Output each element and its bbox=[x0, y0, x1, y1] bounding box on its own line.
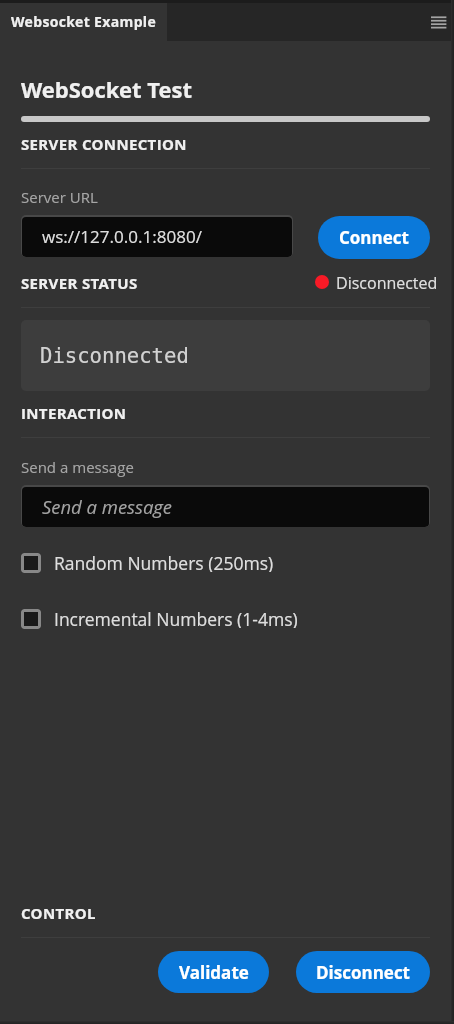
button[interactable]: Validate bbox=[158, 951, 269, 993]
button[interactable]: Disconnect bbox=[296, 951, 430, 993]
button[interactable]: Incremental Numbers (1-4ms) bbox=[21, 608, 430, 629]
staticText: SERVER CONNECTION bbox=[21, 134, 187, 154]
staticText: WebSocket Test bbox=[21, 74, 192, 104]
staticText: Incremental Numbers (1-4ms) bbox=[54, 607, 298, 628]
staticText: Send a message bbox=[42, 494, 172, 519]
staticText: CONTROL bbox=[21, 903, 96, 923]
staticText: Connect bbox=[339, 226, 409, 249]
staticText: Websocket Example bbox=[11, 12, 157, 31]
staticText: Validate bbox=[179, 961, 249, 984]
button[interactable]: ws://127.0.0.1:8080/ bbox=[21, 215, 293, 257]
button[interactable]: Random Numbers (250ms) bbox=[21, 552, 430, 573]
staticText: ws://127.0.0.1:8080/ bbox=[42, 225, 202, 248]
staticText: Random Numbers (250ms) bbox=[54, 551, 274, 572]
button[interactable]: Send a message bbox=[21, 485, 430, 527]
staticText: Server URL bbox=[21, 187, 98, 207]
staticText: Send a message bbox=[21, 457, 134, 477]
button[interactable]: Websocket Example bbox=[0, 0, 167, 41]
button[interactable]: Menu bbox=[423, 9, 454, 34]
staticText: Disconnected bbox=[40, 344, 189, 368]
staticText: Disconnect bbox=[316, 961, 410, 984]
button[interactable]: Connect bbox=[318, 216, 430, 259]
staticText: Disconnected bbox=[336, 272, 438, 294]
staticText: SERVER STATUS bbox=[21, 273, 138, 293]
staticText: INTERACTION bbox=[21, 403, 127, 423]
